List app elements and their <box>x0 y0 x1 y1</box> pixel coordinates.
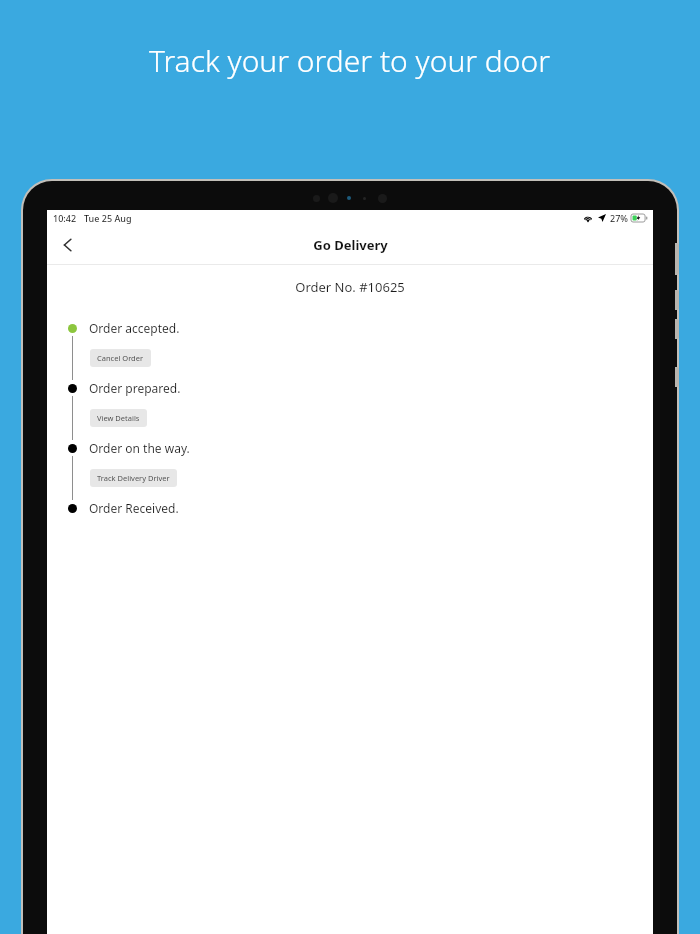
staticText: Order No. #10625 <box>47 278 653 296</box>
staticText: Tue 25 Aug <box>84 212 132 224</box>
staticText: 10:42 <box>53 212 77 224</box>
staticText: Track your order to your door <box>149 40 551 81</box>
staticText: Track Delivery Driver <box>97 473 170 483</box>
staticText: View Details <box>97 413 140 423</box>
staticText: Go Delivery <box>313 236 388 254</box>
staticText: Order Received. <box>89 500 179 516</box>
button[interactable]: Track Delivery Driver <box>90 469 177 487</box>
staticText: Order accepted. <box>89 320 180 336</box>
staticText: Order prepared. <box>89 380 181 396</box>
staticText: 27% <box>610 212 628 224</box>
staticText: Cancel Order <box>97 353 144 363</box>
button[interactable]: View Details <box>90 409 147 427</box>
button[interactable]: Cancel Order <box>90 349 151 367</box>
button[interactable]: Back <box>53 230 83 260</box>
staticText: Order on the way. <box>89 440 190 456</box>
